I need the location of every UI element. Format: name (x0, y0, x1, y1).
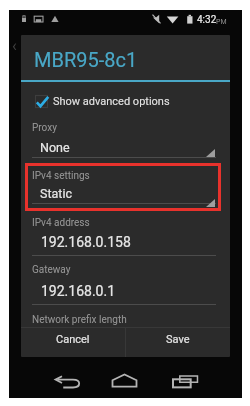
staticText: ‹ (12, 36, 17, 55)
button[interactable]: Show advanced options (35, 95, 170, 108)
staticText: IPv4 address (32, 217, 90, 229)
staticText: Save (166, 333, 190, 346)
button[interactable]: Cancel (21, 328, 125, 357)
button[interactable]: Save (126, 328, 230, 357)
staticText: IPv4 settings (32, 170, 90, 182)
staticText: None (40, 140, 70, 155)
staticText: Cancel (56, 333, 90, 346)
staticText: 192.168.0.158 (41, 234, 131, 250)
button[interactable]: Recent apps (167, 370, 202, 392)
button[interactable]: Navigate up (12, 36, 17, 55)
staticText: Static (40, 186, 72, 201)
staticText: PM (216, 18, 227, 26)
staticText: Network prefix length (32, 314, 127, 326)
staticText: 192.168.0.1 (41, 283, 116, 299)
staticText: Gateway (32, 264, 71, 276)
button[interactable]: Back (50, 371, 85, 393)
button[interactable]: Home (107, 369, 142, 391)
staticText: Proxy (32, 122, 57, 134)
staticText: Show advanced options (53, 95, 170, 108)
staticText: MBR95-8c1 (34, 48, 138, 71)
staticText: 4:32 (197, 14, 217, 26)
